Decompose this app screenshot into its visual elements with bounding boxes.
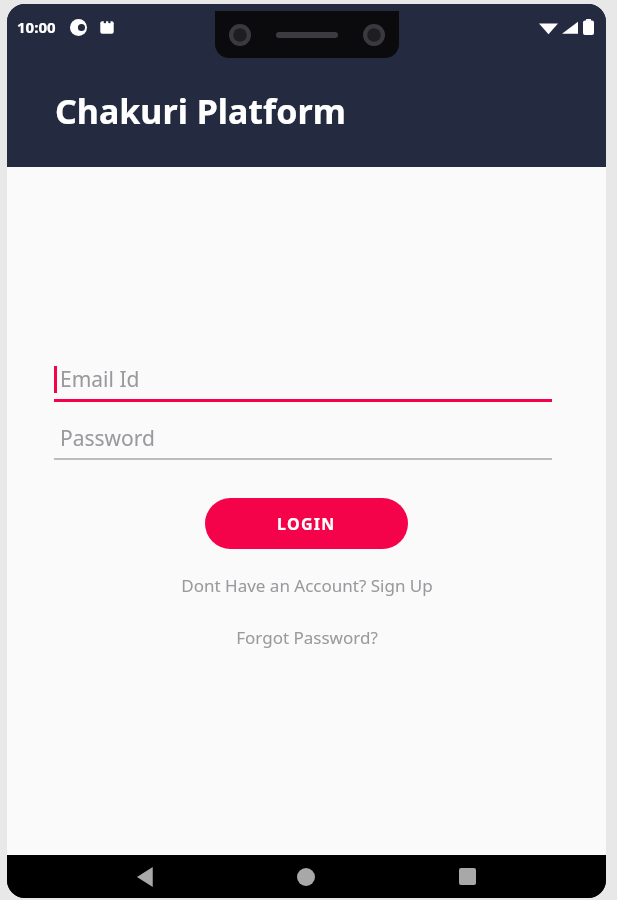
button[interactable]: Forgot Password? (230, 624, 384, 651)
button[interactable]: Dont Have an Account? Sign Up (175, 572, 439, 599)
staticText: Email Id (60, 365, 140, 394)
button[interactable]: LOGIN (205, 498, 408, 549)
staticText: Chakuri Platform (55, 88, 346, 134)
staticText: Dont Have an Account? Sign Up (181, 574, 433, 597)
staticText: 10:00 (17, 17, 56, 37)
staticText: Forgot Password? (236, 626, 378, 649)
button[interactable]: Password (54, 424, 552, 460)
button[interactable]: Recent apps (445, 855, 489, 898)
staticText: LOGIN (277, 513, 336, 535)
staticText: Password (60, 424, 155, 453)
button[interactable]: Back (123, 855, 167, 898)
button[interactable]: Home (284, 855, 328, 898)
button[interactable]: Email Id (54, 365, 552, 402)
